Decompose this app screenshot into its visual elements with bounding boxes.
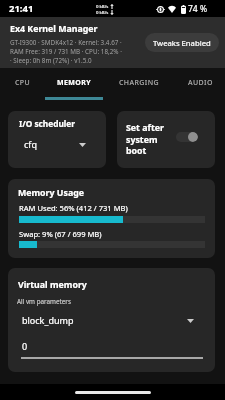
button[interactable]: CPU — [7, 68, 38, 99]
staticText: RAM Used: 56% (412 / 731 MB) — [19, 203, 128, 213]
button[interactable]: MEMORY — [45, 68, 103, 99]
staticText: AUDIO — [188, 78, 213, 88]
staticText: Memory Usage — [18, 187, 85, 199]
staticText: MEMORY — [57, 78, 92, 88]
other: Battery 74 percent — [181, 5, 186, 14]
staticText: GT-I9300 · SMDK4x12 · Kernel: 3.4.67 · — [10, 38, 122, 47]
staticText: All vm parameters — [17, 297, 71, 306]
other: Do not disturb — [156, 6, 165, 13]
button[interactable]: CHARGING — [103, 68, 175, 99]
staticText: 0 kB/s — [96, 9, 109, 15]
button[interactable]: block_dump — [8, 312, 215, 330]
staticText: Set after system boot — [126, 122, 164, 156]
staticText: CHARGING — [119, 78, 159, 88]
staticText: 0 — [22, 340, 28, 352]
button[interactable]: Set after system boot — [117, 111, 215, 168]
staticText: CPU — [15, 78, 31, 88]
staticText: 0 kB/s — [96, 3, 109, 9]
staticText: RAM Free: 319 / 731 MB · CPU: 18,2% · — [10, 47, 122, 56]
staticText: Virtual memory — [18, 279, 87, 291]
button[interactable]: I/O scheduler — [8, 111, 106, 168]
staticText: cfq — [24, 138, 37, 150]
other: Wi-Fi — [168, 5, 176, 13]
button[interactable]: AUDIO — [175, 68, 225, 99]
other: Set after system boot toggle — [176, 132, 198, 142]
staticText: Ex4 Kernel Manager — [10, 23, 98, 35]
staticText: 21:41 — [9, 2, 34, 15]
staticText: Tweaks Enabled — [153, 38, 211, 48]
staticText: block_dump — [22, 314, 74, 326]
staticText: · Sleep: 0h 8m (72%) · v1.5.0 — [10, 56, 92, 65]
staticText: I/O scheduler — [19, 118, 75, 129]
button[interactable]: Tweaks Enabled — [145, 33, 219, 52]
staticText: 74 % — [188, 3, 207, 15]
staticText: Swap: 9% (67 / 699 MB) — [19, 229, 102, 239]
